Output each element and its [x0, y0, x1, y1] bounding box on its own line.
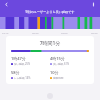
staticText: 覚醒時間: [53, 76, 64, 79]
staticText: 浅い睡眠 61%: [53, 62, 70, 66]
staticText: 深い睡眠 25%: [14, 62, 31, 66]
button[interactable]: 10分: [50, 70, 89, 79]
button[interactable]: 7時間1分: [6, 36, 94, 84]
button[interactable]: 58分: [11, 70, 50, 80]
staticText: 58分: [11, 70, 20, 75]
staticText: 7時間1分: [11, 40, 89, 47]
staticText: 00:30: [32, 31, 39, 34]
button[interactable]: 4時15分: [50, 56, 89, 66]
staticText: 1時47分: [11, 56, 26, 61]
staticText: 05:30: [91, 31, 98, 34]
button[interactable]: 1時47分: [11, 56, 50, 66]
button[interactable]: Sleep stages timeline: [0, 17, 100, 29]
staticText: レム睡眠 14%: [14, 76, 31, 80]
staticText: 23:15: [2, 31, 9, 34]
button[interactable]: Back: [3, 1, 10, 8]
button[interactable]: More options: [90, 1, 97, 8]
staticText: 4時15分: [50, 56, 65, 61]
staticText: 03:00: [61, 31, 68, 34]
staticText: 9割のユーザーよりも良い睡眠です: [0, 10, 100, 14]
staticText: 10分: [50, 70, 59, 75]
